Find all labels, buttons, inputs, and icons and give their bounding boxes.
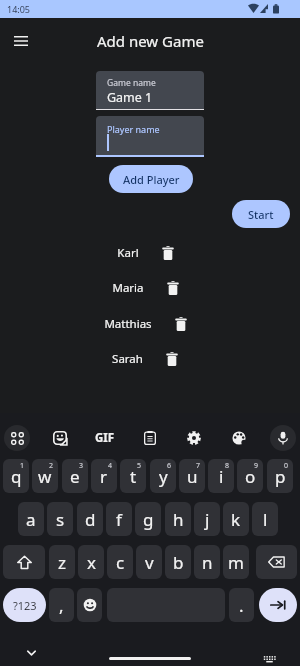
button[interactable]: Shift xyxy=(3,545,45,579)
staticText: y xyxy=(159,465,168,488)
button[interactable]: Delete Maria xyxy=(165,280,181,296)
staticText: . xyxy=(239,594,244,617)
staticText: r xyxy=(100,465,108,488)
staticText: d xyxy=(85,508,96,531)
button[interactable]: t xyxy=(120,459,146,493)
staticText: t xyxy=(130,465,137,488)
button[interactable]: c xyxy=(107,545,133,579)
button[interactable]: Backspace xyxy=(256,545,297,579)
staticText: Game name xyxy=(107,77,156,89)
staticText: 1 xyxy=(20,461,25,471)
button[interactable]: , xyxy=(49,588,74,622)
staticText: a xyxy=(26,508,36,531)
staticText: Add Player xyxy=(123,172,180,187)
staticText: Matthias xyxy=(104,316,152,332)
button[interactable]: o xyxy=(237,459,263,493)
button[interactable]: Clipboard xyxy=(137,425,163,451)
staticText: 5 xyxy=(137,461,142,471)
staticText: 4 xyxy=(108,461,113,471)
staticText: x xyxy=(87,551,96,574)
staticText: 9 xyxy=(254,461,259,471)
button[interactable]: v xyxy=(136,545,162,579)
button[interactable]: y xyxy=(150,459,176,493)
button[interactable]: Switch keyboard xyxy=(257,652,281,666)
staticText: z xyxy=(58,551,66,574)
button[interactable]: Stickers xyxy=(47,425,73,451)
staticText: Karl xyxy=(117,245,139,261)
staticText: Sarah xyxy=(112,351,143,367)
staticText: 0 xyxy=(284,461,289,471)
button[interactable]: j xyxy=(194,502,220,536)
button[interactable]: p xyxy=(267,459,293,493)
button[interactable]: Apps xyxy=(4,425,30,451)
button[interactable]: f xyxy=(106,502,132,536)
button[interactable]: z xyxy=(49,545,75,579)
button[interactable]: Player name xyxy=(96,116,204,155)
staticText: Maria xyxy=(112,280,144,296)
button[interactable]: GIF xyxy=(92,425,118,451)
button[interactable]: . xyxy=(229,588,254,622)
button[interactable]: Settings xyxy=(181,425,207,451)
staticText: , xyxy=(59,594,64,617)
staticText: ?123 xyxy=(13,598,37,613)
button[interactable]: e xyxy=(62,459,88,493)
staticText: 6 xyxy=(167,461,172,471)
staticText: 3 xyxy=(79,461,84,471)
button[interactable]: Voice input xyxy=(270,425,296,451)
staticText: g xyxy=(143,508,154,531)
button[interactable]: Menu xyxy=(7,27,35,55)
staticText: m xyxy=(228,551,244,574)
button[interactable]: Delete Sarah xyxy=(164,351,180,367)
button[interactable]: u xyxy=(179,459,205,493)
staticText: s xyxy=(56,508,65,531)
button[interactable]: i xyxy=(208,459,234,493)
staticText: u xyxy=(187,465,198,488)
staticText: Game 1 xyxy=(107,89,153,106)
button[interactable]: h xyxy=(165,502,191,536)
button[interactable]: Game name xyxy=(96,71,204,109)
staticText: c xyxy=(116,551,125,574)
staticText: 8 xyxy=(225,461,230,471)
staticText: h xyxy=(173,508,184,531)
button[interactable]: Enter xyxy=(259,588,297,622)
button[interactable]: Delete Matthias xyxy=(173,316,189,332)
button[interactable]: g xyxy=(135,502,161,536)
button[interactable]: b xyxy=(165,545,191,579)
button[interactable]: ?123 xyxy=(3,588,46,622)
staticText: k xyxy=(231,508,241,531)
button[interactable]: a xyxy=(18,502,44,536)
button[interactable]: r xyxy=(91,459,117,493)
button[interactable]: n xyxy=(194,545,220,579)
button[interactable]: Add Player xyxy=(109,165,193,193)
button[interactable]: k xyxy=(223,502,249,536)
staticText: e xyxy=(70,465,80,488)
button[interactable]: s xyxy=(47,502,73,536)
button[interactable]: Hide keyboard xyxy=(20,647,43,658)
button[interactable]: Emoji xyxy=(77,588,102,622)
staticText: Player name xyxy=(107,123,160,135)
button[interactable]: q xyxy=(3,459,29,493)
staticText: j xyxy=(205,508,210,531)
staticText: q xyxy=(11,465,22,488)
button[interactable]: Start xyxy=(232,200,290,228)
staticText: l xyxy=(263,508,268,531)
button[interactable]: Delete Karl xyxy=(160,245,176,261)
button[interactable]: l xyxy=(252,502,278,536)
button[interactable]: x xyxy=(78,545,104,579)
staticText: 2 xyxy=(49,461,54,471)
button[interactable]: d xyxy=(77,502,103,536)
staticText: 14:05 xyxy=(7,3,31,15)
staticText: 7 xyxy=(196,461,201,471)
staticText: Start xyxy=(248,207,274,222)
button[interactable]: m xyxy=(223,545,249,579)
button[interactable]: w xyxy=(32,459,58,493)
staticText: v xyxy=(145,551,154,574)
staticText: b xyxy=(173,551,184,574)
staticText: w xyxy=(38,465,52,488)
staticText: f xyxy=(116,508,122,531)
staticText: i xyxy=(219,465,224,488)
button[interactable]: Themes xyxy=(226,425,252,451)
staticText: o xyxy=(245,465,256,488)
staticText: p xyxy=(275,465,286,488)
